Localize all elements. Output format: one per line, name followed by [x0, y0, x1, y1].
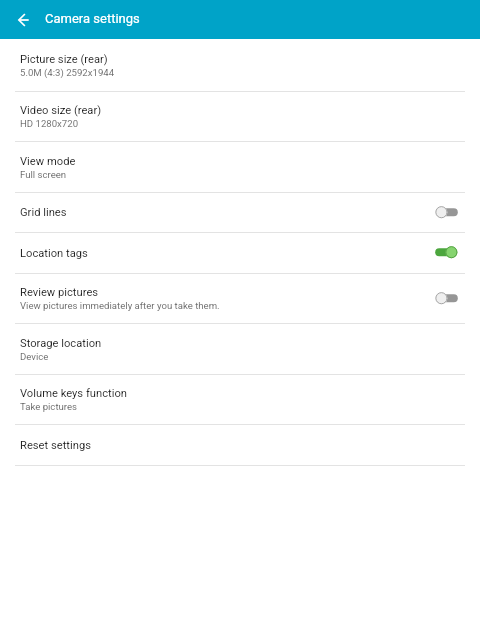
- staticText: Reset settings: [20, 439, 91, 452]
- staticText: Review pictures: [20, 286, 99, 299]
- staticText: Take pictures: [20, 401, 78, 412]
- staticText: Camera settings: [45, 11, 140, 26]
- button[interactable]: Picture size (rear): [0, 39, 480, 91]
- staticText: 5.0M (4:3) 2592x1944: [20, 67, 115, 78]
- button[interactable]: Video size (rear): [0, 92, 480, 141]
- button[interactable]: Location tags: [0, 233, 480, 273]
- button[interactable]: Reset settings: [0, 425, 480, 465]
- staticText: Volume keys function: [20, 387, 127, 400]
- button[interactable]: Switch on: [435, 243, 458, 263]
- button[interactable]: Back: [12, 9, 34, 31]
- staticText: View mode: [20, 155, 76, 168]
- button[interactable]: View mode: [0, 142, 480, 192]
- staticText: View pictures immediately after you take…: [20, 300, 220, 311]
- staticText: Full screen: [20, 169, 67, 180]
- staticText: Grid lines: [20, 206, 67, 219]
- staticText: Device: [20, 351, 49, 362]
- button[interactable]: Storage location: [0, 324, 480, 374]
- button[interactable]: Review pictures: [0, 274, 480, 323]
- button[interactable]: Switch off: [435, 203, 458, 223]
- staticText: Video size (rear): [20, 104, 102, 117]
- button[interactable]: Grid lines: [0, 193, 480, 232]
- staticText: Storage location: [20, 337, 102, 350]
- button[interactable]: Switch off: [435, 289, 458, 309]
- staticText: Picture size (rear): [20, 53, 108, 66]
- button[interactable]: Volume keys function: [0, 375, 480, 424]
- staticText: HD 1280x720: [20, 118, 79, 129]
- staticText: Location tags: [20, 247, 88, 260]
